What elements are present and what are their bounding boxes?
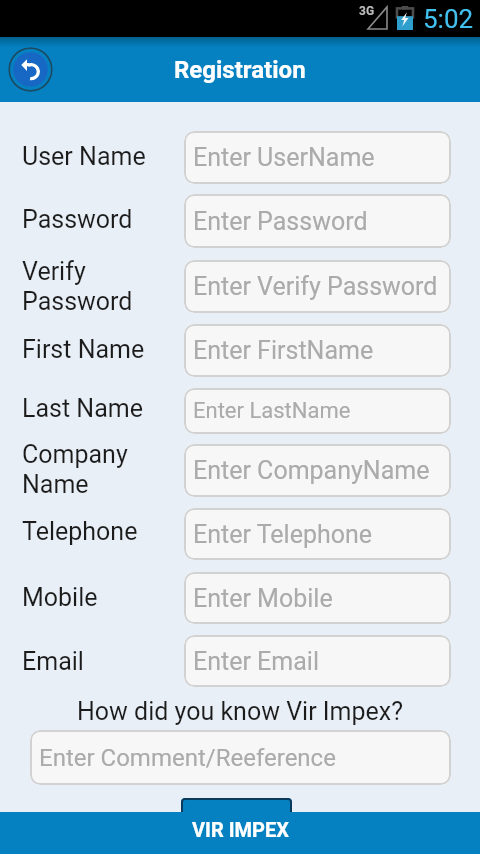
button[interactable]: Enter CompanyName bbox=[184, 444, 451, 497]
staticText: Enter CompanyName bbox=[193, 456, 430, 485]
staticText: Registration bbox=[174, 56, 306, 84]
staticText: Enter Verify Password bbox=[193, 272, 438, 301]
button[interactable]: Enter Password bbox=[184, 194, 451, 248]
staticText: 3G bbox=[359, 4, 375, 18]
staticText: First Name bbox=[22, 335, 182, 364]
staticText: Enter Comment/Reeference bbox=[39, 744, 336, 772]
staticText: Last Name bbox=[22, 394, 182, 423]
staticText: Submit bbox=[208, 809, 266, 830]
button[interactable]: Enter Email bbox=[184, 635, 451, 687]
staticText: User Name bbox=[22, 142, 182, 171]
button[interactable]: Enter Mobile bbox=[184, 572, 451, 624]
staticText: Telephone bbox=[22, 517, 182, 546]
staticText: VIR IMPEX bbox=[192, 818, 289, 841]
staticText: Company Name bbox=[22, 440, 182, 499]
button[interactable]: Enter Comment/Reeference bbox=[30, 730, 451, 785]
staticText: Enter LastName bbox=[193, 398, 351, 424]
staticText: Enter FirstName bbox=[193, 336, 374, 365]
staticText: Enter Telephone bbox=[193, 520, 373, 549]
button[interactable]: Enter FirstName bbox=[184, 324, 451, 377]
button[interactable]: Enter LastName bbox=[184, 388, 451, 434]
staticText: Enter UserName bbox=[193, 143, 375, 172]
staticText: Enter Email bbox=[193, 647, 320, 676]
button[interactable]: Enter Telephone bbox=[184, 508, 451, 560]
staticText: Email bbox=[22, 647, 182, 676]
staticText: Mobile bbox=[22, 583, 182, 612]
button[interactable]: Enter Verify Password bbox=[184, 260, 451, 313]
staticText: Password bbox=[22, 205, 182, 234]
staticText: 5:02 bbox=[423, 4, 474, 34]
button[interactable]: VIR IMPEX bbox=[0, 812, 480, 854]
button[interactable]: Enter UserName bbox=[184, 131, 451, 184]
staticText: Enter Mobile bbox=[193, 584, 333, 613]
staticText: How did you know Vir Impex? bbox=[0, 697, 480, 726]
staticText: Verify Password bbox=[22, 257, 182, 316]
button[interactable]: Back bbox=[8, 47, 53, 92]
staticText: Enter Password bbox=[193, 207, 368, 236]
button[interactable]: Submit bbox=[181, 798, 292, 840]
